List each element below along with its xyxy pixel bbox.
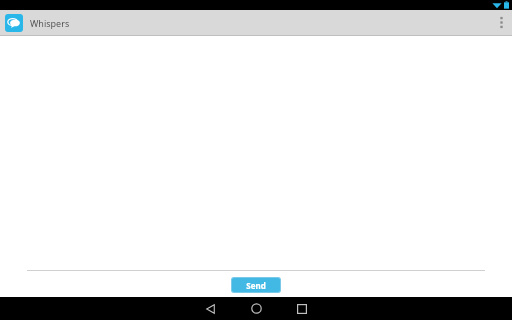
staticText: Whispers <box>30 17 70 29</box>
button[interactable]: Back <box>187 297 233 320</box>
button[interactable] <box>0 255 512 271</box>
button[interactable]: Send <box>232 278 280 292</box>
button[interactable]: Whispers app icon <box>5 14 23 32</box>
button[interactable]: Recent apps <box>279 297 325 320</box>
button[interactable]: More options <box>490 10 512 35</box>
button[interactable]: Home <box>233 297 279 320</box>
staticText: Send <box>246 280 266 291</box>
